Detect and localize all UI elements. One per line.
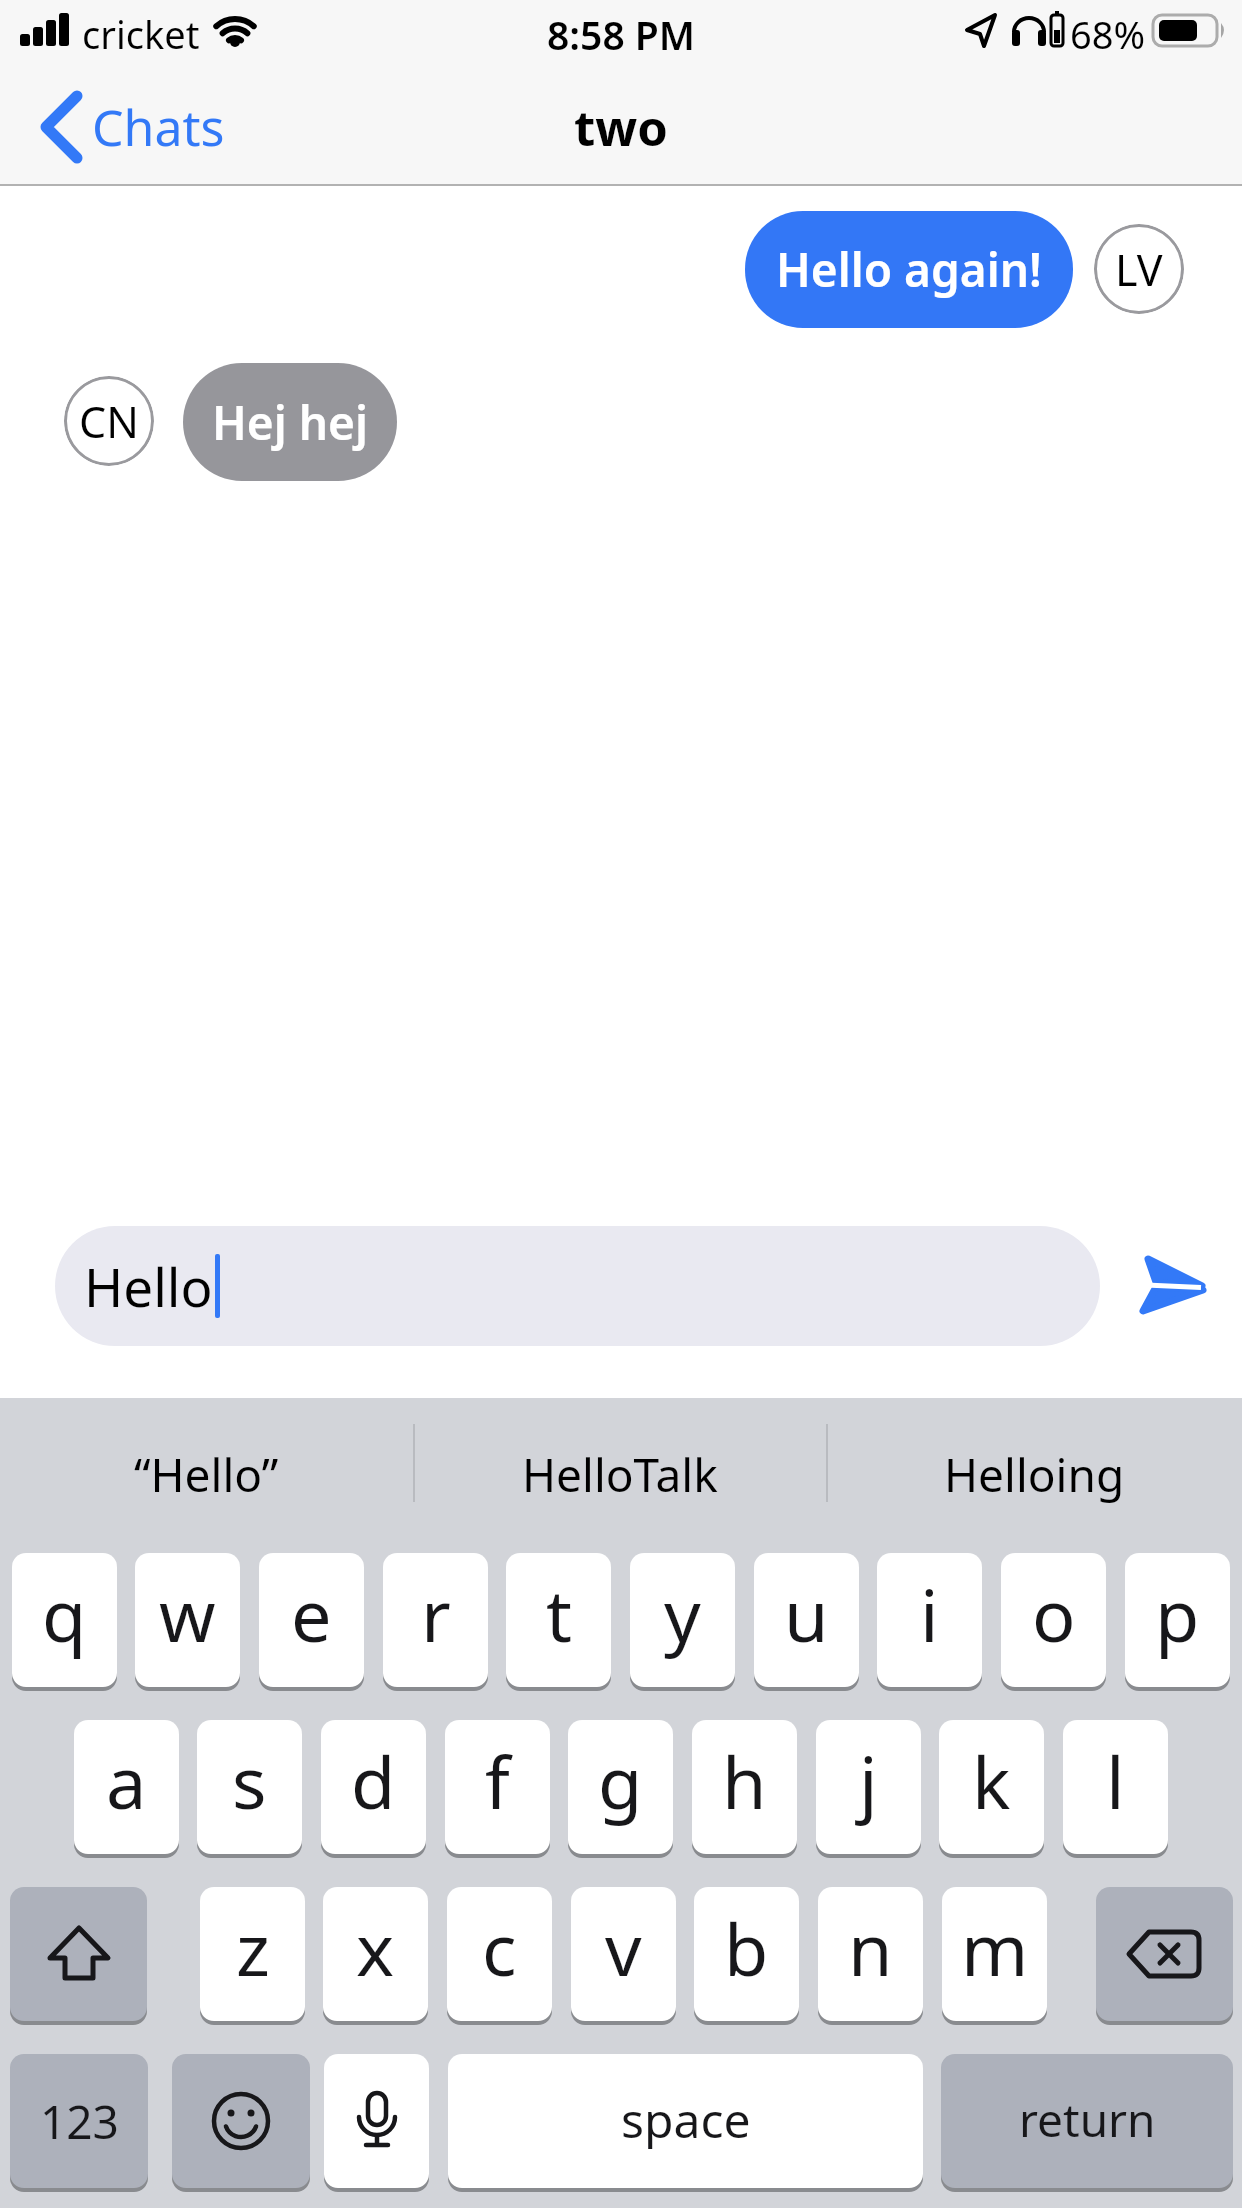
staticText: l <box>1106 1732 1125 1830</box>
staticText: a <box>106 1732 147 1830</box>
button[interactable]: “Hello” <box>0 1398 413 1550</box>
staticText: p <box>1155 1565 1200 1663</box>
staticText: Chats <box>92 93 225 161</box>
button[interactable]: w <box>135 1553 240 1687</box>
staticText: two <box>574 94 668 161</box>
staticText: Helloing <box>944 1443 1125 1506</box>
staticText: cricket <box>82 8 200 54</box>
button[interactable]: Helloing <box>827 1398 1242 1550</box>
button[interactable]: j <box>816 1720 921 1854</box>
staticText: f <box>485 1732 510 1830</box>
button[interactable]: HelloTalk <box>414 1398 826 1550</box>
button[interactable]: t <box>506 1553 611 1687</box>
staticText: o <box>1032 1565 1076 1663</box>
button[interactable]: d <box>321 1720 426 1854</box>
button[interactable]: l <box>1063 1720 1168 1854</box>
button[interactable] <box>1096 1887 1233 2021</box>
staticText: x <box>356 1899 395 1997</box>
staticText: space <box>621 2087 751 2152</box>
button[interactable]: e <box>259 1553 364 1687</box>
staticText: Hello again! <box>776 238 1042 301</box>
staticText: “Hello” <box>134 1443 279 1506</box>
staticText: 8:58 PM <box>547 8 696 54</box>
staticText: d <box>351 1732 396 1830</box>
staticText: u <box>784 1565 829 1663</box>
staticText: k <box>972 1732 1011 1830</box>
button[interactable]: s <box>197 1720 302 1854</box>
staticText: v <box>605 1899 642 1997</box>
button[interactable]: v <box>571 1887 676 2021</box>
staticText: m <box>961 1899 1029 1997</box>
button[interactable]: Chats <box>40 90 300 164</box>
staticText: CN <box>79 392 139 451</box>
button[interactable]: a <box>74 1720 179 1854</box>
staticText: e <box>291 1565 332 1663</box>
button[interactable]: Hello <box>55 1226 1100 1346</box>
button[interactable]: space <box>448 2054 923 2188</box>
staticText: y <box>664 1565 701 1663</box>
staticText: n <box>848 1899 893 1997</box>
button[interactable]: k <box>939 1720 1044 1854</box>
button[interactable]: u <box>754 1553 859 1687</box>
staticText: Hej hej <box>212 391 368 454</box>
button[interactable] <box>10 1887 147 2021</box>
button[interactable]: p <box>1125 1553 1230 1687</box>
staticText: c <box>482 1899 517 1997</box>
staticText: 68% <box>1070 8 1146 54</box>
staticText: i <box>920 1565 939 1663</box>
button[interactable]: o <box>1001 1553 1106 1687</box>
staticText: return <box>1019 2088 1156 2151</box>
button[interactable]: return <box>941 2054 1233 2188</box>
button[interactable]: i <box>877 1553 982 1687</box>
button[interactable]: h <box>692 1720 797 1854</box>
staticText: g <box>598 1732 643 1830</box>
button[interactable]: n <box>818 1887 923 2021</box>
button[interactable]: f <box>445 1720 550 1854</box>
staticText: r <box>421 1565 451 1663</box>
button[interactable]: y <box>630 1553 735 1687</box>
staticText: h <box>722 1732 767 1830</box>
button[interactable] <box>1138 1252 1208 1316</box>
staticText: b <box>724 1899 769 1997</box>
button[interactable]: z <box>200 1887 305 2021</box>
staticText: q <box>42 1565 87 1663</box>
staticText: HelloTalk <box>522 1443 718 1506</box>
button[interactable]: g <box>568 1720 673 1854</box>
staticText: LV <box>1115 240 1163 299</box>
staticText: z <box>236 1899 270 1997</box>
button[interactable]: x <box>323 1887 428 2021</box>
staticText: 123 <box>40 2090 119 2153</box>
button[interactable]: c <box>447 1887 552 2021</box>
staticText: t <box>546 1565 572 1663</box>
staticText: w <box>159 1565 216 1663</box>
button[interactable]: b <box>694 1887 799 2021</box>
button[interactable]: r <box>383 1553 488 1687</box>
staticText: j <box>859 1732 878 1830</box>
button[interactable]: q <box>12 1553 117 1687</box>
staticText: Hello <box>84 1250 213 1322</box>
button[interactable] <box>324 2054 429 2188</box>
button[interactable]: m <box>942 1887 1047 2021</box>
button[interactable]: 123 <box>10 2054 148 2188</box>
staticText: s <box>232 1732 267 1830</box>
button[interactable] <box>172 2054 310 2188</box>
